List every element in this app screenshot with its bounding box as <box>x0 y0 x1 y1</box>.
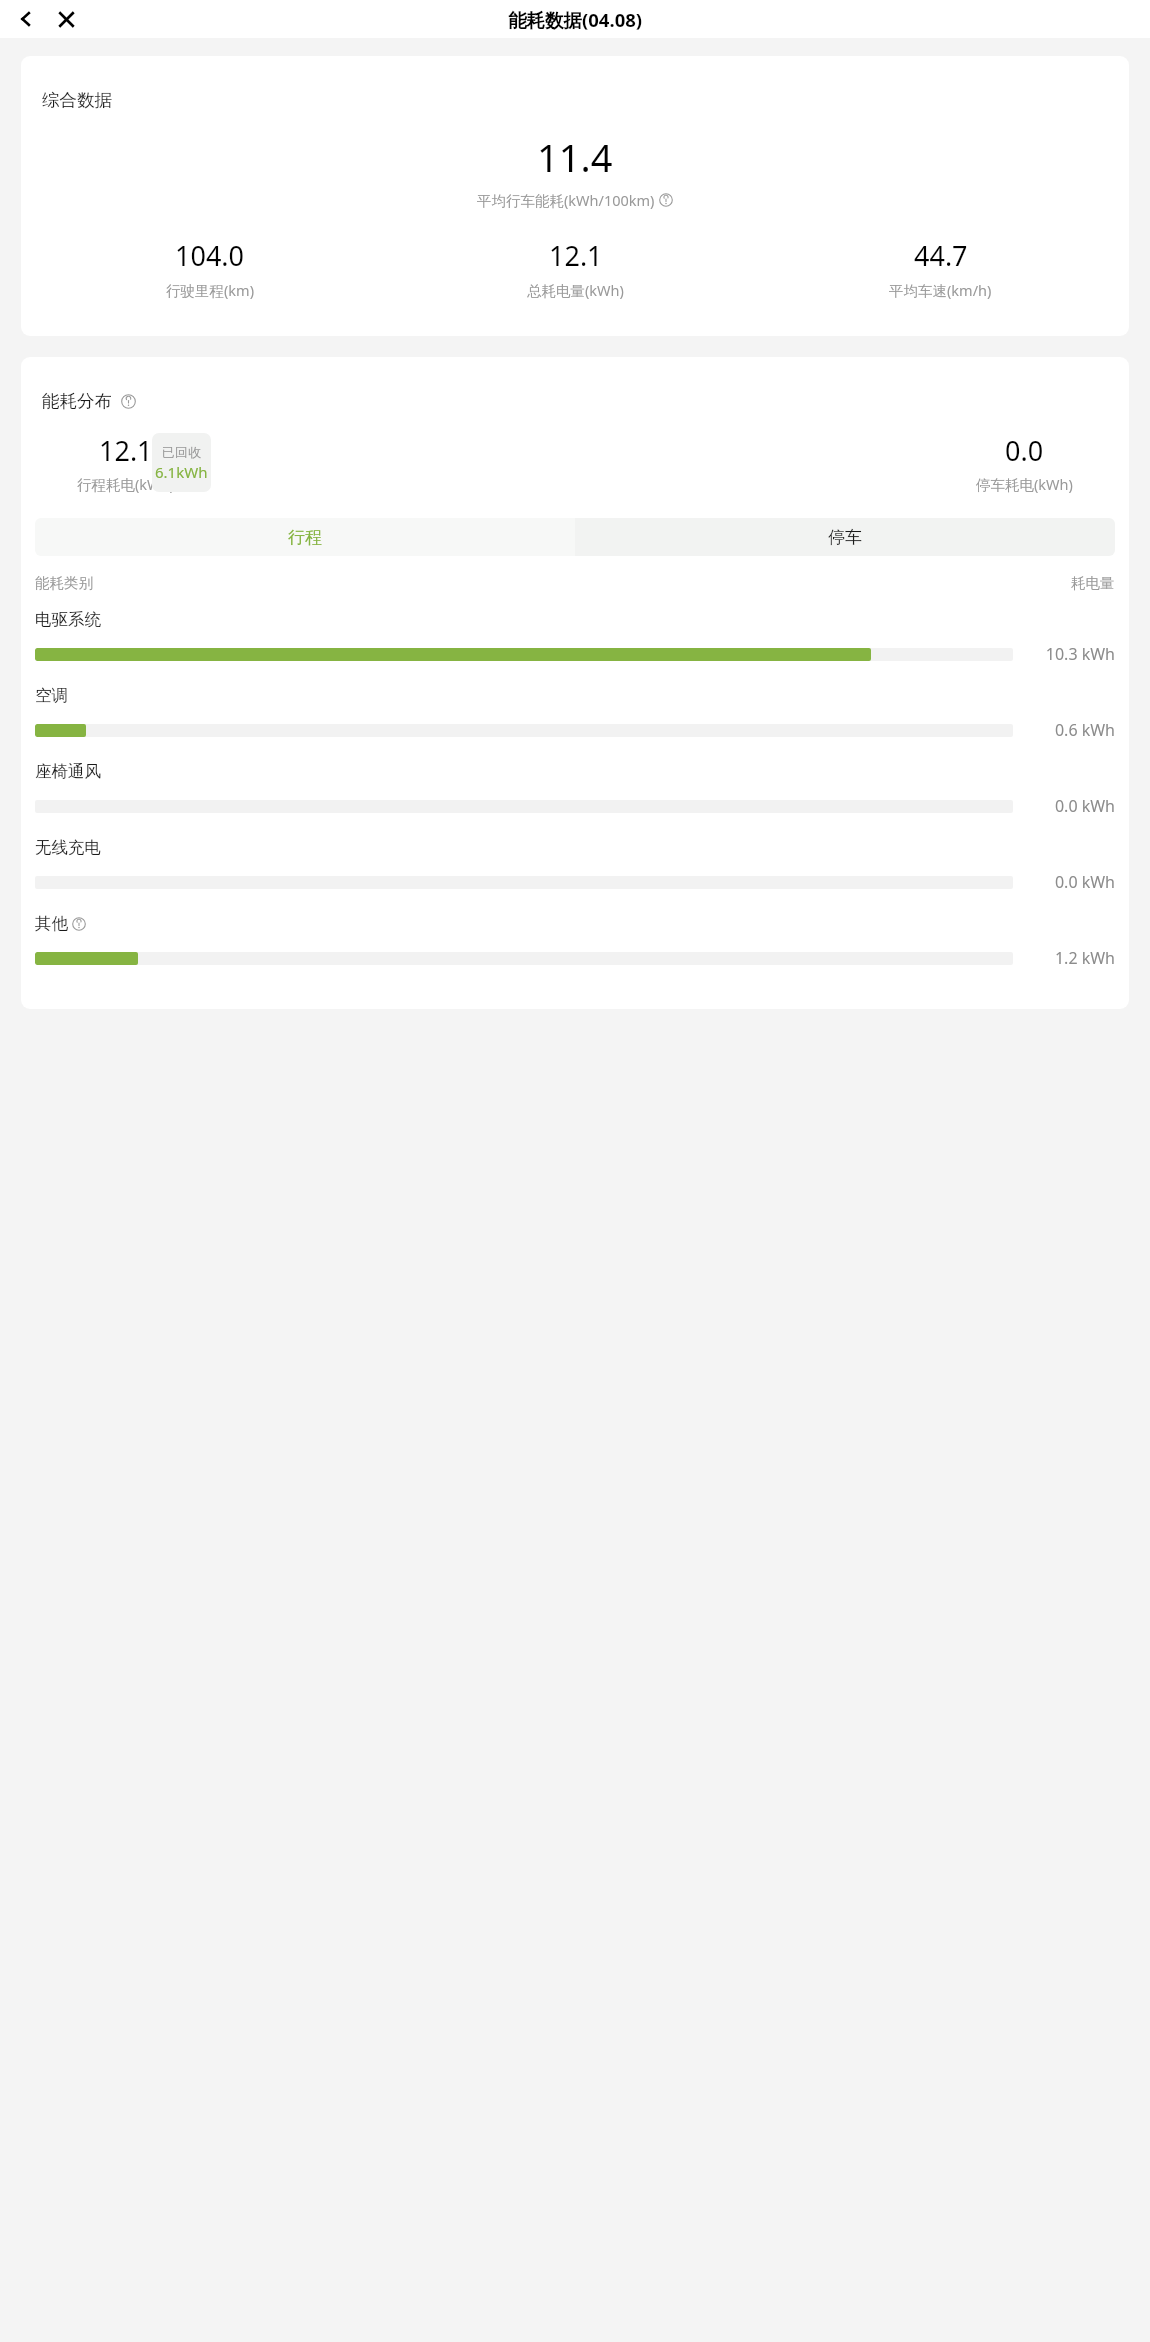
staticText: 平均车速(km/h) <box>889 280 992 300</box>
button[interactable]: 座椅通风 <box>21 761 1129 817</box>
staticText: 其他 <box>35 913 68 934</box>
staticText: 电驱系统 <box>35 609 101 630</box>
staticText: 座椅通风 <box>35 761 101 782</box>
button[interactable]: 空调 <box>21 685 1129 741</box>
button[interactable]: Back <box>7 0 45 38</box>
staticText: 11.4 <box>537 131 613 183</box>
staticText: 0.0 kWh <box>1054 871 1115 893</box>
staticText: 0.6 kWh <box>1054 719 1115 741</box>
button[interactable]: 能耗分布说明 <box>120 393 137 410</box>
staticText: 平均行车能耗(kWh/100km) <box>477 190 655 210</box>
staticText: 44.7 <box>914 237 968 274</box>
staticText: 耗电量 <box>1071 574 1115 592</box>
staticText: 已回收 <box>162 444 201 460</box>
staticText: 停车耗电(kWh) <box>976 474 1073 494</box>
staticText: 行驶里程(km) <box>166 280 255 300</box>
staticText: 空调 <box>35 685 68 706</box>
staticText: 行程 <box>288 527 322 548</box>
staticText: 行程耗电(kWh) <box>77 474 174 494</box>
button[interactable]: 电驱系统 <box>21 609 1129 665</box>
button[interactable]: 其他 <box>21 913 1129 969</box>
button[interactable]: 说明 <box>658 192 674 208</box>
button[interactable]: 行程 <box>35 518 575 556</box>
staticText: 综合数据 <box>42 89 112 111</box>
staticText: 1.2 kWh <box>1054 947 1115 969</box>
staticText: 无线充电 <box>35 837 101 858</box>
button[interactable]: 无线充电 <box>21 837 1129 893</box>
staticText: 10.3 kWh <box>1045 643 1115 665</box>
button[interactable]: 停车 <box>575 518 1115 556</box>
staticText: 能耗类别 <box>35 574 93 592</box>
staticText: 104.0 <box>175 237 245 274</box>
staticText: 12.1 <box>99 432 153 469</box>
staticText: 6.1kWh <box>155 462 208 482</box>
button[interactable]: 已回收 <box>152 433 211 492</box>
staticText: 总耗电量(kWh) <box>527 280 624 300</box>
staticText: 12.1 <box>549 237 603 274</box>
staticText: 停车 <box>828 527 862 548</box>
button[interactable]: Close <box>47 0 85 38</box>
staticText: 0.0 <box>1005 432 1044 469</box>
staticText: 能耗数据(04.08) <box>508 7 643 32</box>
staticText: 能耗分布 <box>42 390 112 412</box>
staticText: 0.0 kWh <box>1054 795 1115 817</box>
